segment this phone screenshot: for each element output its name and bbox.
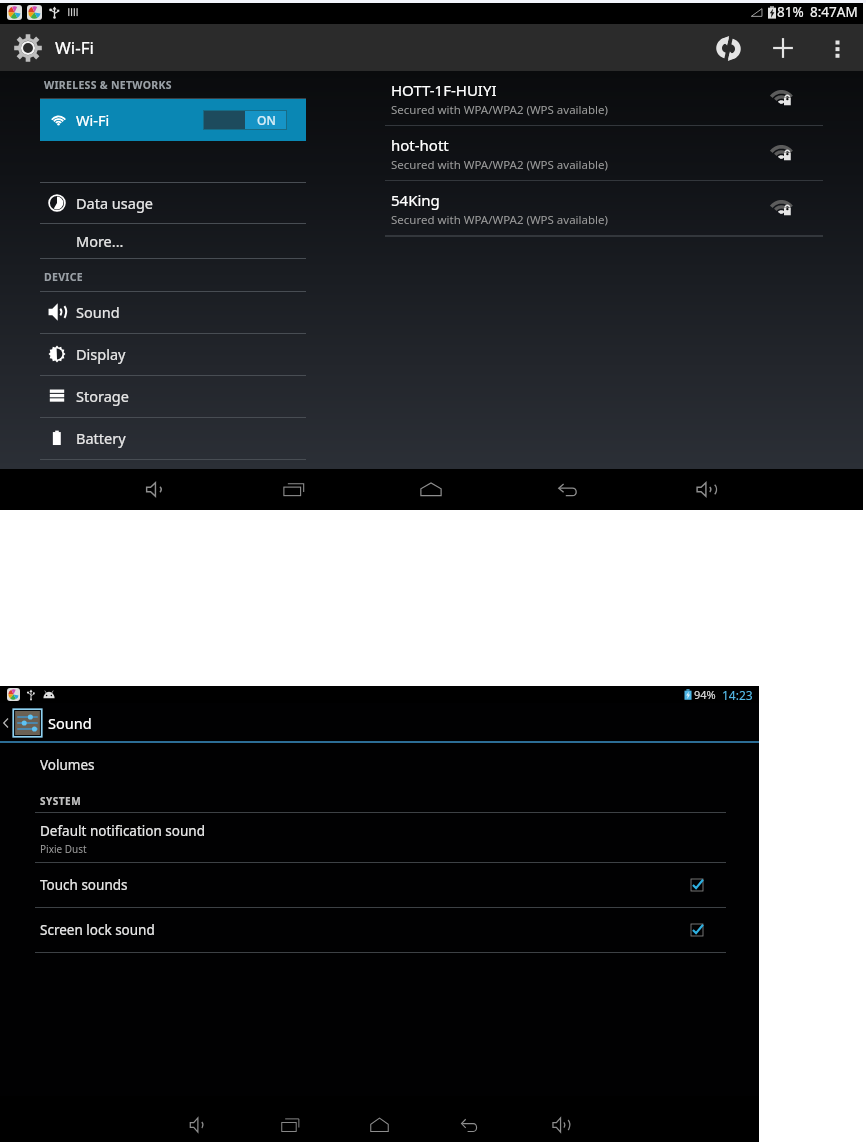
button[interactable]: Home: [409, 472, 453, 506]
staticText: Touch sounds: [40, 876, 128, 894]
staticText: Data usage: [76, 193, 153, 213]
button[interactable]: Volume down: [133, 472, 177, 506]
staticText: Display: [76, 344, 126, 364]
staticText: DEVICE: [44, 270, 83, 284]
button[interactable]: Volumes: [40, 756, 340, 778]
staticText: Default notification sound: [40, 822, 205, 840]
staticText: Sound: [76, 302, 120, 322]
button[interactable]: Recents: [270, 1110, 310, 1140]
button[interactable]: Settings: [13, 33, 43, 63]
button[interactable]: Scan: [705, 25, 752, 71]
staticText: Sound: [48, 713, 92, 733]
staticText: Pixie Dust: [40, 842, 87, 856]
button[interactable]: Volume up: [685, 472, 729, 506]
staticText: 54King: [391, 190, 440, 210]
button[interactable]: Back: [546, 472, 590, 506]
staticText: Volumes: [40, 756, 95, 774]
staticText: 94%: [694, 687, 716, 702]
button[interactable]: hot-hott: [385, 126, 823, 181]
staticText: More...: [76, 231, 124, 251]
button[interactable]: Battery: [40, 418, 306, 458]
button[interactable]: Volume down: [177, 1110, 217, 1140]
button[interactable]: Add network: [759, 25, 806, 71]
button[interactable]: Data usage: [40, 183, 306, 223]
staticText: Battery: [76, 428, 126, 448]
button[interactable]: Wi-Fi: [40, 99, 306, 141]
staticText: HOTT-1F-HUIYI: [391, 80, 497, 100]
staticText: 14:23: [722, 687, 753, 703]
staticText: 8:47AM: [810, 3, 858, 21]
staticText: SYSTEM: [40, 794, 82, 808]
staticText: Storage: [76, 386, 129, 406]
button[interactable]: HOTT-1F-HUIYI: [385, 71, 823, 126]
button[interactable]: Default notification sound: [0, 813, 759, 861]
button[interactable]: Back: [1, 703, 43, 742]
button[interactable]: Display: [40, 334, 306, 374]
button[interactable]: Storage: [40, 376, 306, 416]
staticText: 81%: [777, 3, 804, 21]
staticText: WIRELESS & NETWORKS: [44, 78, 172, 92]
button[interactable]: Sound: [40, 292, 306, 332]
staticText: Secured with WPA/WPA2 (WPS available): [391, 157, 608, 173]
staticText: ON: [257, 112, 276, 128]
button[interactable]: More options: [817, 25, 857, 71]
button[interactable]: More...: [40, 224, 306, 258]
button[interactable]: Touch sounds: [0, 863, 759, 907]
staticText: Wi-Fi: [55, 36, 94, 59]
button[interactable]: Back: [449, 1110, 489, 1140]
button[interactable]: Home: [359, 1110, 399, 1140]
staticText: Wi-Fi: [76, 110, 110, 130]
staticText: Secured with WPA/WPA2 (WPS available): [391, 212, 608, 228]
button[interactable]: 54King: [385, 181, 823, 236]
button[interactable]: Recents: [272, 472, 316, 506]
staticText: Secured with WPA/WPA2 (WPS available): [391, 102, 608, 118]
button[interactable]: Screen lock sound: [0, 908, 759, 952]
staticText: Screen lock sound: [40, 921, 155, 939]
button[interactable]: Volume up: [541, 1110, 581, 1140]
staticText: hot-hott: [391, 135, 449, 155]
